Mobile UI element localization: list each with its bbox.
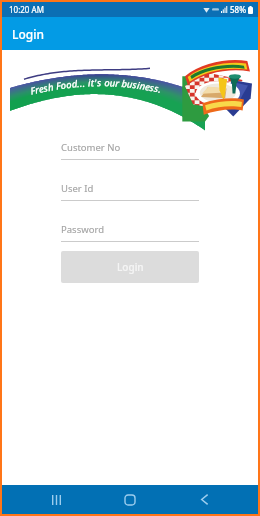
button[interactable]: Back	[184, 485, 224, 514]
staticText: Login	[117, 260, 144, 274]
staticText: Login	[12, 26, 44, 42]
button[interactable]: Recents	[36, 485, 76, 514]
staticText: User Id	[61, 182, 94, 195]
button[interactable]: Login	[61, 251, 199, 283]
staticText: Password	[61, 223, 104, 236]
button[interactable]: Customer No	[61, 141, 199, 160]
staticText: Customer No	[61, 141, 121, 154]
button[interactable]: Password	[61, 223, 199, 242]
staticText: 58%	[230, 4, 246, 15]
staticText: 10:20 AM	[9, 4, 44, 15]
button[interactable]: Home	[110, 485, 150, 514]
button[interactable]: Login	[2, 17, 258, 50]
button[interactable]: User Id	[61, 182, 199, 201]
